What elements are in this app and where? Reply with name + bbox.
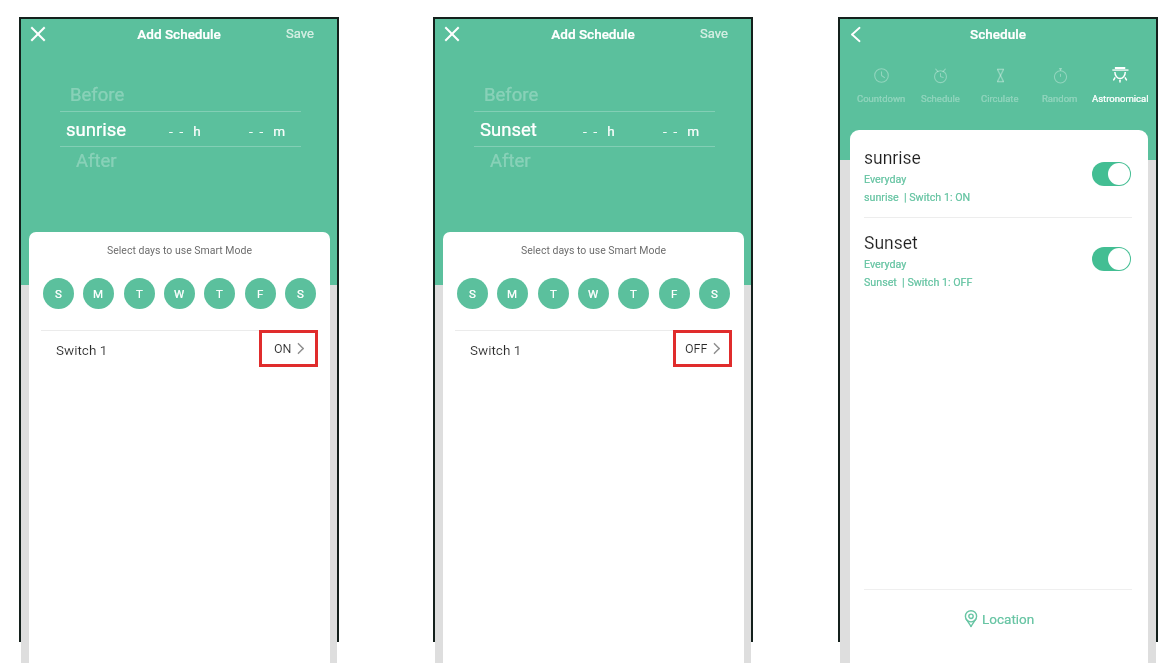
staticText: Schedule (840, 26, 1156, 42)
button[interactable]: Save (279, 21, 321, 45)
staticText: Select days to use Smart Mode (443, 244, 744, 256)
button[interactable]: F (659, 278, 690, 309)
staticText: sunrise | Switch 1: ON (864, 191, 971, 204)
staticText: Sunset (480, 119, 537, 141)
button[interactable]: Close (439, 21, 465, 47)
staticText: sunrise (864, 148, 921, 169)
button[interactable]: F (245, 278, 276, 309)
staticText: Before (70, 84, 125, 106)
button[interactable]: Close (25, 21, 51, 47)
staticText: Astronomical (1092, 93, 1149, 104)
button[interactable]: Schedule (911, 67, 970, 104)
button[interactable]: Save (693, 21, 735, 45)
staticText: M (93, 287, 104, 300)
staticText: W (174, 287, 185, 300)
staticText: - - m (249, 123, 286, 139)
button[interactable]: Back (842, 21, 868, 47)
button[interactable]: S (699, 278, 730, 309)
staticText: Save (700, 26, 728, 41)
button[interactable]: W (578, 278, 609, 309)
button[interactable]: Switch 1 (443, 330, 744, 369)
button[interactable]: M (83, 278, 114, 309)
button[interactable]: Location (850, 589, 1148, 651)
staticText: Before (484, 84, 539, 106)
staticText: Sunset (864, 233, 918, 254)
staticText: Everyday (864, 258, 907, 271)
button[interactable]: OFF (673, 330, 732, 367)
staticText: Select days to use Smart Mode (29, 244, 330, 256)
button[interactable]: W (164, 278, 195, 309)
staticText: T (550, 287, 557, 300)
staticText: Circulate (981, 93, 1019, 104)
staticText: S (469, 287, 476, 300)
button[interactable]: Sunset (850, 224, 1148, 307)
staticText: Everyday (864, 173, 907, 186)
staticText: S (711, 287, 718, 300)
staticText: Schedule (921, 93, 960, 104)
staticText: - - h (169, 123, 201, 139)
button[interactable]: M (497, 278, 528, 309)
button[interactable]: T (618, 278, 649, 309)
staticText: Add Schedule (435, 26, 751, 42)
button[interactable] (1092, 247, 1131, 271)
button[interactable]: T (538, 278, 569, 309)
staticText: Switch 1 (56, 342, 108, 358)
button[interactable] (1092, 162, 1131, 186)
staticText: T (136, 287, 143, 300)
button[interactable]: Circulate (970, 67, 1030, 104)
staticText: OFF (685, 341, 708, 356)
staticText: Location (982, 611, 1035, 627)
staticText: Countdown (857, 93, 906, 104)
staticText: Sunset | Switch 1: OFF (864, 276, 973, 289)
staticText: - - m (663, 123, 700, 139)
staticText: S (297, 287, 304, 300)
staticText: Random (1042, 93, 1078, 104)
button[interactable]: Countdown (852, 67, 911, 104)
button[interactable]: sunrise (850, 139, 1148, 222)
staticText: Add Schedule (21, 26, 337, 42)
staticText: S (55, 287, 62, 300)
button[interactable]: Astronomical (1090, 67, 1150, 104)
button[interactable]: Random (1030, 67, 1090, 104)
button[interactable]: Switch 1 (29, 330, 330, 369)
button[interactable]: ON (259, 330, 318, 367)
button[interactable]: T (124, 278, 155, 309)
staticText: - - h (583, 123, 615, 139)
button[interactable]: S (457, 278, 488, 309)
staticText: After (76, 150, 117, 172)
staticText: W (588, 287, 599, 300)
staticText: M (507, 287, 518, 300)
staticText: Switch 1 (470, 342, 522, 358)
staticText: Save (286, 26, 314, 41)
staticText: F (257, 287, 264, 300)
staticText: F (671, 287, 678, 300)
button[interactable]: S (285, 278, 316, 309)
button[interactable]: T (204, 278, 235, 309)
staticText: T (216, 287, 223, 300)
staticText: T (630, 287, 637, 300)
button[interactable]: S (43, 278, 74, 309)
staticText: sunrise (66, 119, 127, 141)
staticText: ON (274, 341, 292, 356)
staticText: After (490, 150, 531, 172)
